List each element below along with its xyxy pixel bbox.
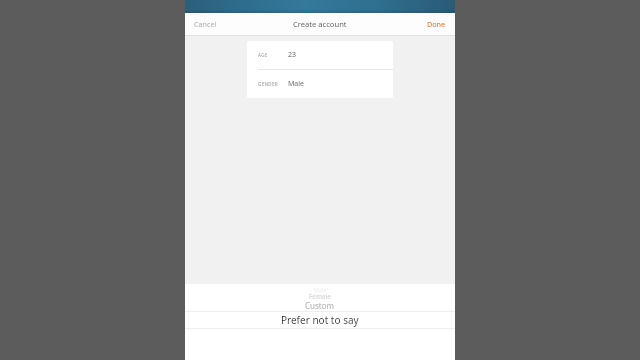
staticText: GENDER (258, 81, 278, 87)
staticText: Custom (305, 300, 335, 311)
staticText: Prefer not to say (281, 313, 359, 327)
button[interactable]: Custom (185, 300, 455, 311)
button[interactable]: Prefer not to say (185, 311, 455, 328)
staticText: Cancel (194, 19, 217, 29)
staticText: Done (427, 19, 446, 29)
staticText: Male (314, 286, 326, 293)
staticText: 23 (288, 50, 297, 60)
staticText: Male (288, 79, 305, 89)
button[interactable]: AGE (247, 41, 393, 69)
staticText: Create account (293, 19, 347, 29)
staticText: Female (309, 292, 331, 301)
button[interactable]: GENDER (247, 70, 393, 98)
button[interactable]: Cancel (185, 15, 226, 33)
button[interactable]: Female (185, 292, 455, 301)
staticText: AGE (258, 52, 268, 58)
button[interactable]: Done (418, 15, 455, 33)
